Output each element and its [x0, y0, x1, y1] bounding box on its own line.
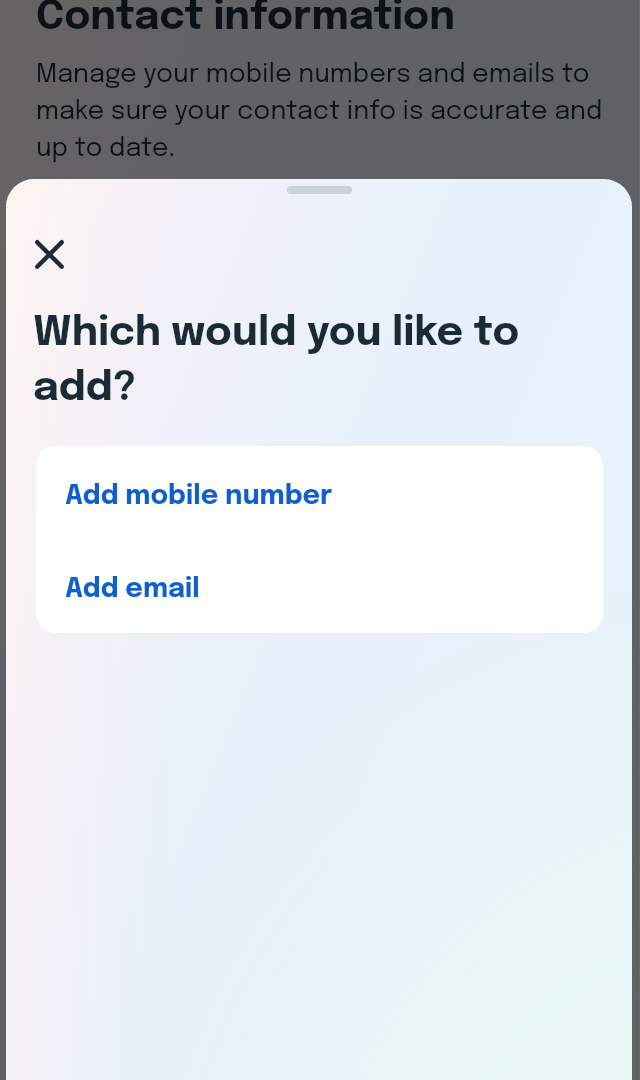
- button[interactable]: Close: [21, 226, 78, 283]
- button[interactable]: Add mobile number: [36, 446, 603, 541]
- staticText: Add mobile number: [65, 483, 333, 511]
- button[interactable]: Add email: [36, 541, 603, 633]
- staticText: Add email: [65, 576, 200, 604]
- staticText: Contact information: [36, 0, 455, 38]
- staticText: Which would you like to add?: [33, 313, 552, 409]
- staticText: Manage your mobile numbers and emails to…: [36, 61, 610, 162]
